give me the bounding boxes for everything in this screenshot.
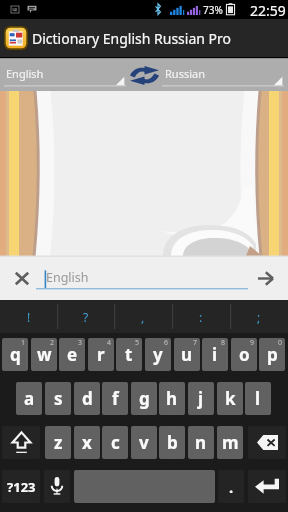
button[interactable]: : bbox=[172, 300, 230, 333]
button[interactable]: p bbox=[259, 338, 285, 371]
button[interactable]: q bbox=[2, 338, 28, 371]
staticText: l bbox=[255, 387, 261, 410]
staticText: 22:59 bbox=[250, 1, 286, 20]
button[interactable]: Symbols bbox=[2, 470, 40, 503]
button[interactable]: o bbox=[231, 338, 257, 371]
button[interactable]: Russian bbox=[161, 57, 288, 91]
staticText: English bbox=[46, 269, 89, 286]
staticText: 3 bbox=[78, 338, 83, 348]
staticText: : bbox=[199, 309, 203, 325]
button[interactable]: g bbox=[131, 382, 157, 415]
button[interactable]: Shift bbox=[2, 426, 40, 459]
button[interactable]: a bbox=[16, 382, 42, 415]
staticText: u bbox=[181, 343, 193, 366]
staticText: 1 bbox=[21, 338, 26, 348]
button[interactable]: y bbox=[145, 338, 171, 371]
button[interactable]: , bbox=[114, 300, 172, 333]
staticText: Russian bbox=[165, 66, 205, 81]
staticText: k bbox=[225, 387, 236, 410]
button[interactable]: h bbox=[159, 382, 185, 415]
button[interactable]: d bbox=[74, 382, 100, 415]
button[interactable]: t bbox=[116, 338, 142, 371]
button[interactable]: Period bbox=[218, 470, 244, 503]
button[interactable]: i bbox=[202, 338, 228, 371]
button[interactable]: m bbox=[217, 426, 243, 459]
staticText: 0 bbox=[278, 338, 283, 348]
staticText: o bbox=[239, 343, 250, 366]
staticText: ; bbox=[257, 309, 261, 325]
staticText: r bbox=[97, 343, 105, 366]
staticText: y bbox=[153, 343, 163, 366]
staticText: , bbox=[141, 309, 145, 325]
staticText: a bbox=[24, 387, 35, 410]
button[interactable]: n bbox=[188, 426, 214, 459]
staticText: 7 bbox=[193, 338, 198, 348]
staticText: n bbox=[195, 431, 207, 454]
staticText: 9 bbox=[250, 338, 255, 348]
staticText: q bbox=[10, 343, 21, 366]
button[interactable]: Clear bbox=[7, 267, 36, 290]
button[interactable]: Voice input bbox=[44, 470, 70, 503]
button[interactable]: Enter bbox=[248, 470, 286, 503]
staticText: 2 bbox=[50, 338, 55, 348]
staticText: s bbox=[54, 387, 63, 410]
staticText: z bbox=[54, 431, 63, 454]
button[interactable]: e bbox=[59, 338, 85, 371]
staticText: 73% bbox=[203, 3, 223, 17]
staticText: x bbox=[82, 431, 92, 454]
staticText: j bbox=[198, 387, 204, 410]
button[interactable]: Swap languages bbox=[128, 57, 161, 91]
staticText: . bbox=[229, 477, 234, 497]
staticText: d bbox=[82, 387, 93, 410]
button[interactable]: j bbox=[188, 382, 214, 415]
button[interactable]: u bbox=[174, 338, 200, 371]
button[interactable]: w bbox=[31, 338, 57, 371]
button[interactable]: v bbox=[131, 426, 157, 459]
button[interactable]: f bbox=[102, 382, 128, 415]
staticText: ! bbox=[27, 309, 31, 325]
button[interactable]: l bbox=[245, 382, 271, 415]
staticText: p bbox=[267, 343, 278, 366]
button[interactable]: z bbox=[45, 426, 71, 459]
staticText: e bbox=[67, 343, 78, 366]
button[interactable]: ! bbox=[0, 300, 57, 333]
button[interactable]: English bbox=[0, 57, 127, 91]
button[interactable]: ; bbox=[230, 300, 288, 333]
button[interactable]: Backspace bbox=[248, 426, 286, 459]
staticText: v bbox=[139, 431, 149, 454]
staticText: ?123 bbox=[7, 478, 36, 496]
staticText: Dictionary English Russian Pro bbox=[32, 29, 231, 48]
staticText: f bbox=[112, 387, 119, 410]
staticText: g bbox=[139, 387, 150, 410]
staticText: b bbox=[167, 431, 178, 454]
button[interactable]: r bbox=[88, 338, 114, 371]
button[interactable]: Search bbox=[250, 266, 281, 291]
staticText: 4 bbox=[107, 338, 112, 348]
staticText: English bbox=[6, 66, 44, 81]
staticText: ? bbox=[83, 309, 89, 325]
button[interactable]: b bbox=[159, 426, 185, 459]
button[interactable]: c bbox=[102, 426, 128, 459]
staticText: 6 bbox=[164, 338, 169, 348]
button[interactable]: Dictionary English Russian Pro bbox=[0, 19, 288, 57]
button[interactable]: k bbox=[217, 382, 243, 415]
button[interactable]: s bbox=[45, 382, 71, 415]
button[interactable]: ? bbox=[57, 300, 114, 333]
staticText: t bbox=[125, 343, 133, 366]
staticText: 8 bbox=[221, 338, 226, 348]
staticText: c bbox=[111, 431, 120, 454]
button[interactable]: x bbox=[74, 426, 100, 459]
staticText: m bbox=[222, 431, 239, 454]
staticText: h bbox=[166, 387, 178, 410]
staticText: 5 bbox=[135, 338, 140, 348]
staticText: w bbox=[37, 343, 52, 366]
staticText: i bbox=[212, 343, 218, 366]
button[interactable]: English bbox=[36, 257, 248, 300]
